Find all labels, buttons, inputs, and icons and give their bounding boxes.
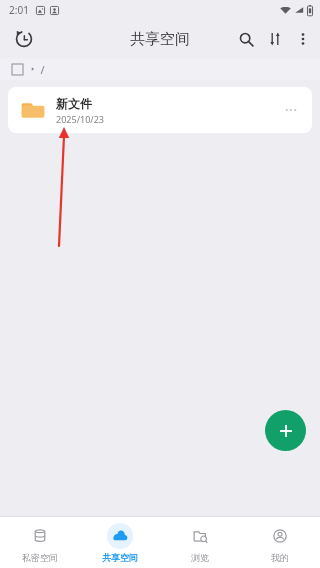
button[interactable]: Item options [274, 93, 308, 127]
staticText: 私密空间 [22, 552, 58, 563]
button[interactable]: 我的 [240, 517, 320, 568]
staticText: 共享空间 [130, 30, 190, 49]
button[interactable]: Add [265, 410, 306, 451]
button[interactable]: Select all [8, 60, 26, 78]
staticText: / [40, 62, 45, 77]
staticText: 新文件 [56, 96, 92, 111]
button[interactable]: More options [289, 25, 317, 53]
button[interactable]: Sort [261, 25, 289, 53]
staticText: 我的 [271, 552, 289, 563]
button[interactable]: Search [231, 24, 261, 54]
staticText: 2025/10/23 [56, 113, 104, 125]
staticText: 共享空间 [102, 552, 138, 563]
button[interactable]: 私密空间 [0, 517, 80, 568]
button[interactable]: 新文件 [8, 87, 312, 133]
staticText: 2:01 [9, 3, 29, 17]
button[interactable]: 共享空间 [80, 517, 160, 568]
button[interactable]: History [7, 22, 41, 56]
button[interactable]: 浏览 [160, 517, 240, 568]
staticText: 浏览 [191, 552, 209, 563]
